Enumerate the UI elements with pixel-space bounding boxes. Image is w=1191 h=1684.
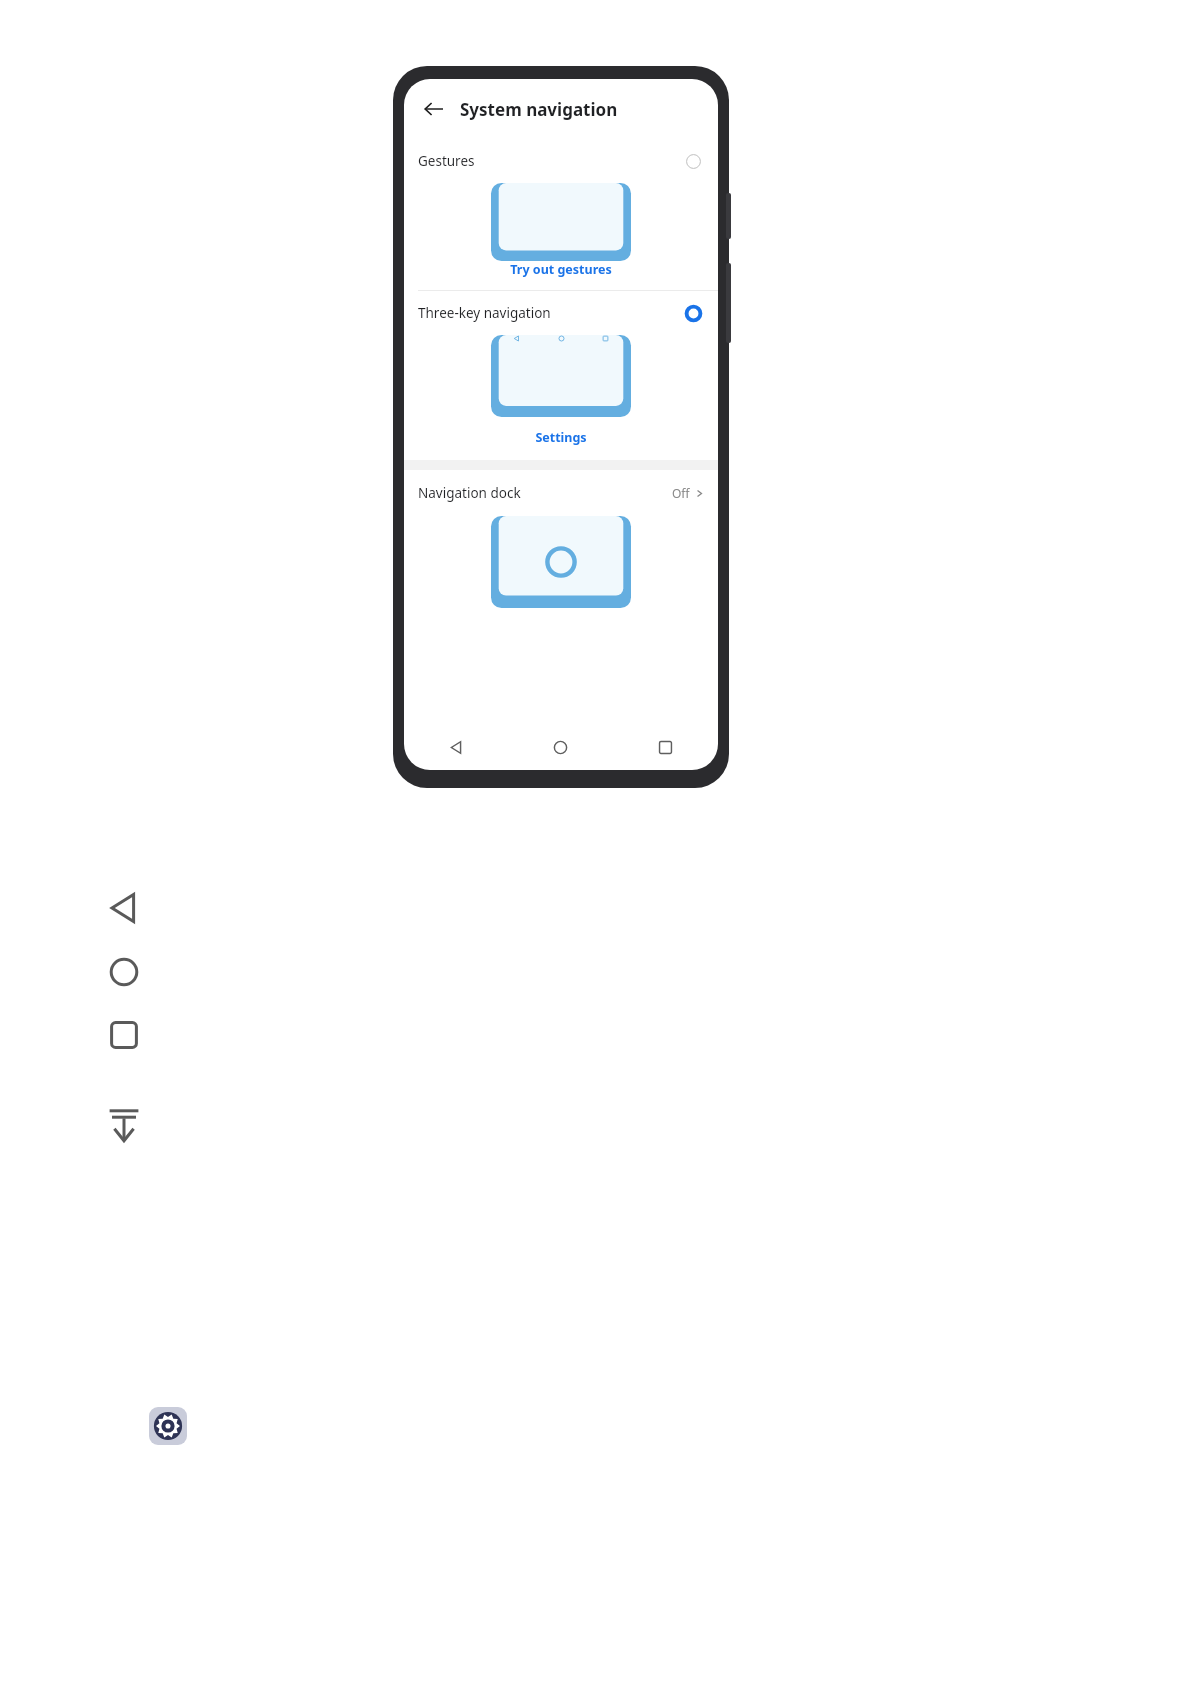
button[interactable]: Try out gestures [404, 261, 718, 278]
button[interactable]: Back [416, 91, 452, 127]
staticText: Gestures [418, 152, 475, 170]
button[interactable]: Settings [404, 429, 718, 446]
button[interactable]: Gestures [404, 139, 718, 183]
button[interactable]: Navigation dock [404, 470, 718, 516]
button[interactable]: Recents [613, 724, 718, 770]
staticText: System navigation [460, 98, 618, 121]
button[interactable]: Settings [149, 1407, 187, 1445]
staticText: Navigation dock [418, 484, 521, 502]
staticText: Try out gestures [510, 261, 612, 278]
staticText: Three-key navigation [418, 304, 551, 322]
staticText: Settings [535, 429, 587, 446]
button[interactable]: Home [508, 724, 613, 770]
button[interactable]: Selected [682, 302, 704, 324]
staticText: Off [672, 485, 690, 501]
button[interactable]: Three-key navigation [404, 291, 718, 335]
button[interactable]: Back [404, 724, 508, 770]
button[interactable]: Not selected [682, 150, 704, 172]
